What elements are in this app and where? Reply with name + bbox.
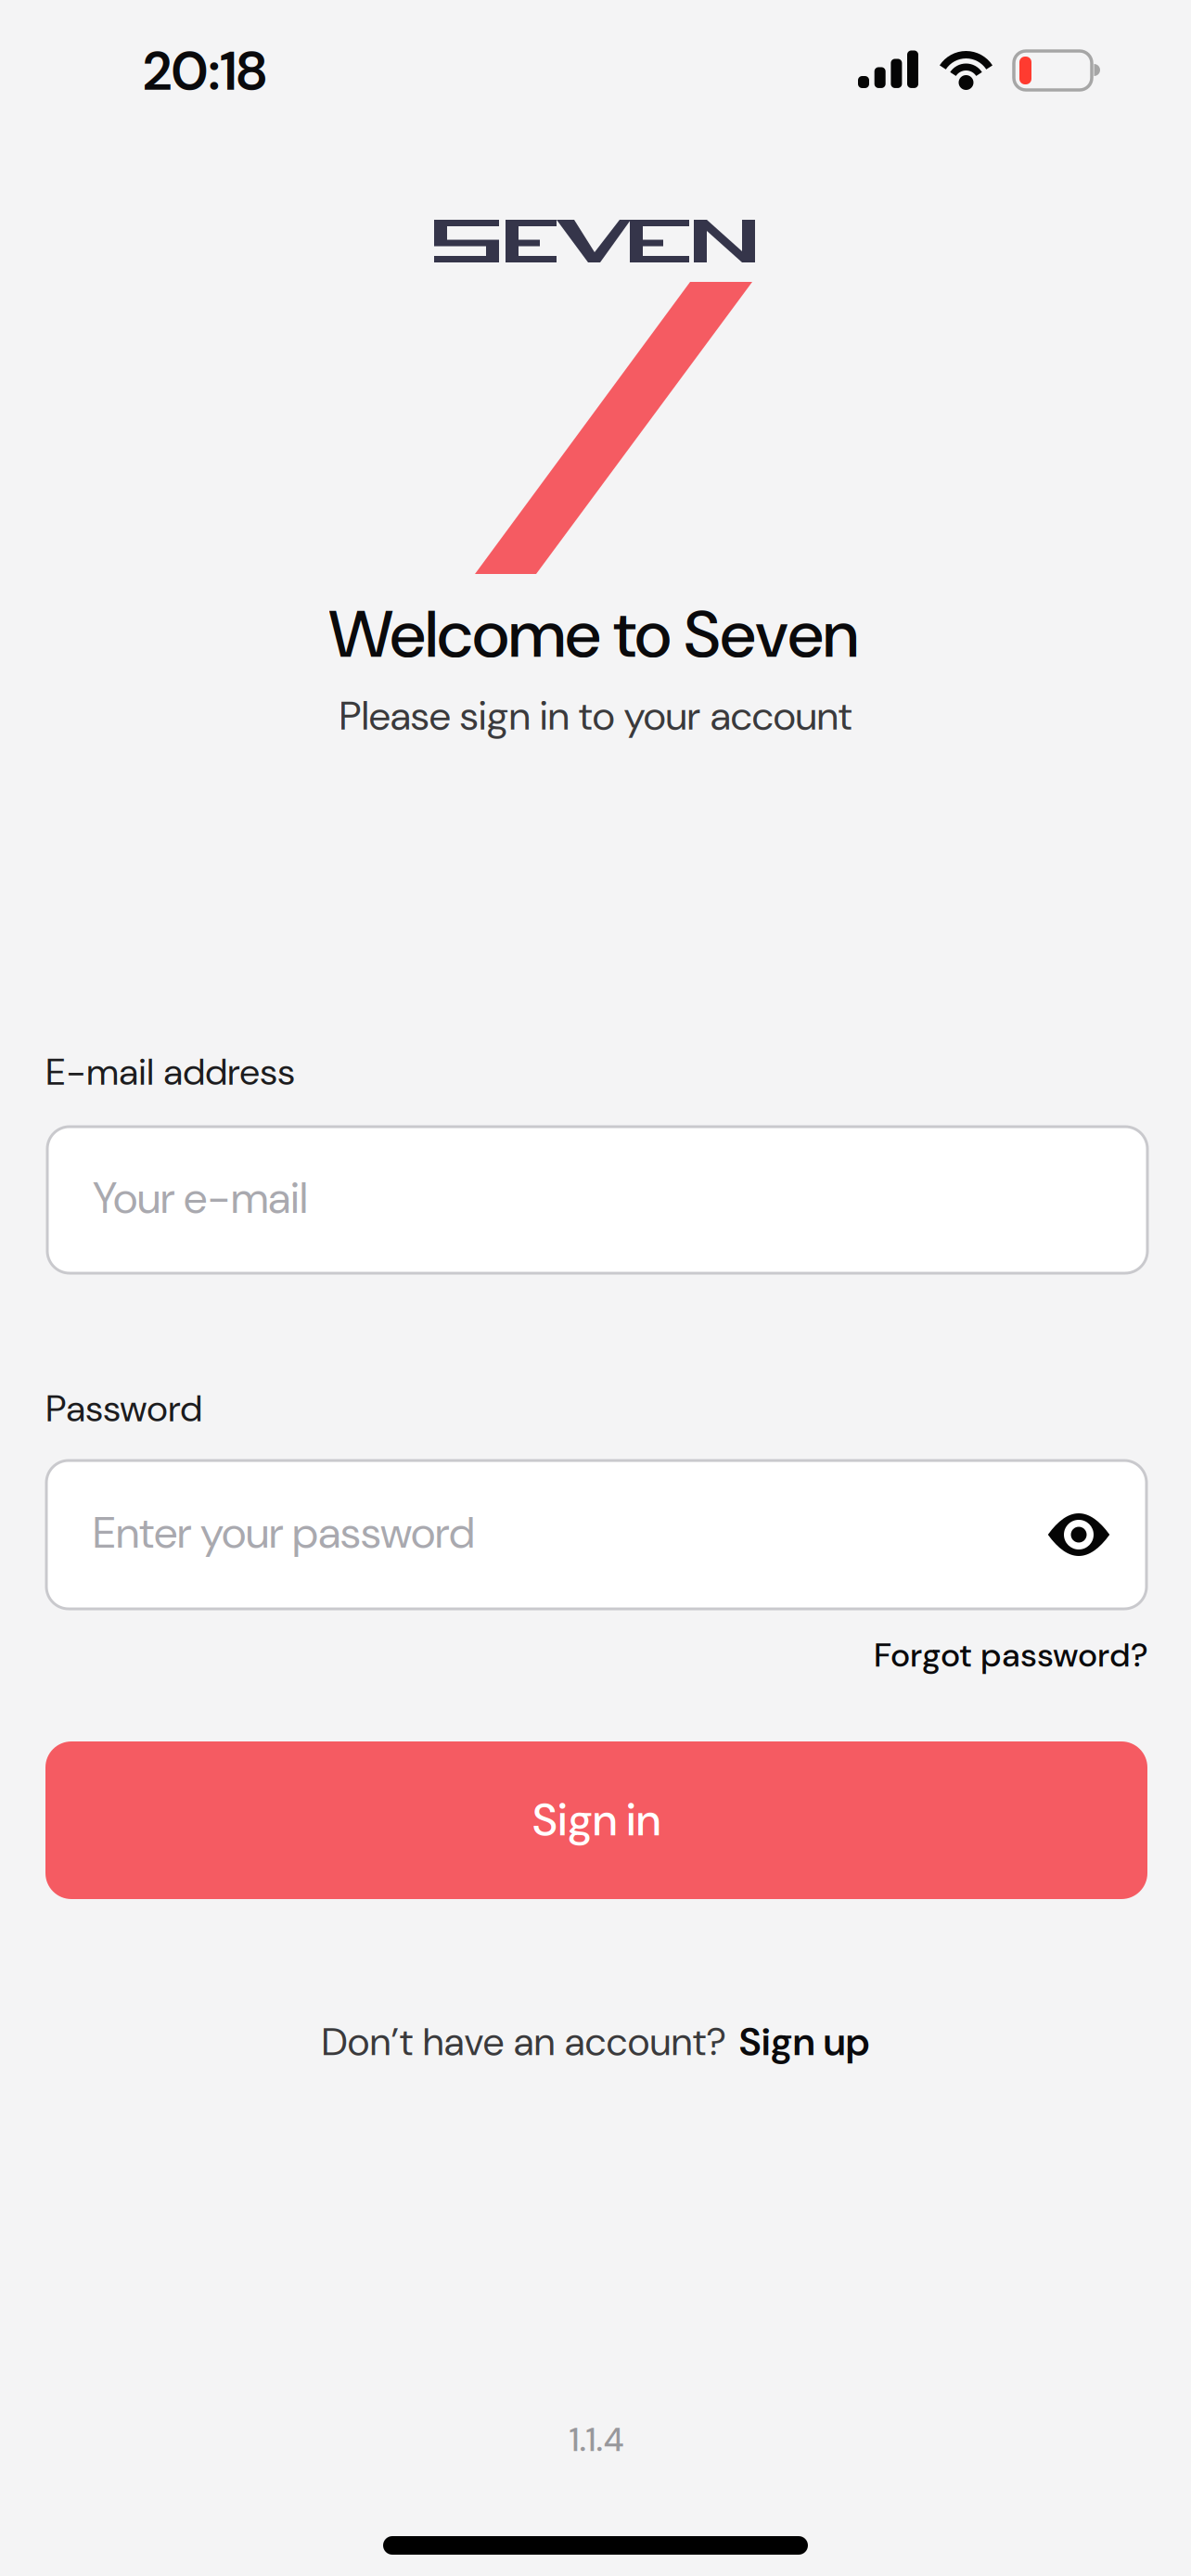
button[interactable]: Forgot password? <box>874 1634 1148 1677</box>
staticText: Forgot password? <box>874 1634 1148 1677</box>
staticText: Sign up <box>739 2017 870 2067</box>
staticText: 20:18 <box>143 36 267 106</box>
staticText: Please sign in to your account <box>339 690 852 742</box>
staticText: Your e-mail <box>93 1170 308 1226</box>
staticText: Welcome to Seven <box>329 591 858 677</box>
staticText: Sign in <box>532 1791 660 1849</box>
button[interactable]: Sign up <box>739 2017 870 2067</box>
button[interactable]: Sign in <box>45 1741 1147 1899</box>
button[interactable]: Show password <box>1028 1484 1130 1586</box>
staticText: Enter your password <box>93 1504 475 1561</box>
staticText: Don’t have an account? <box>321 2017 727 2067</box>
staticText: 1.1.4 <box>569 2418 624 2461</box>
staticText: E-mail address <box>45 1048 295 1096</box>
staticText: Password <box>45 1384 202 1433</box>
